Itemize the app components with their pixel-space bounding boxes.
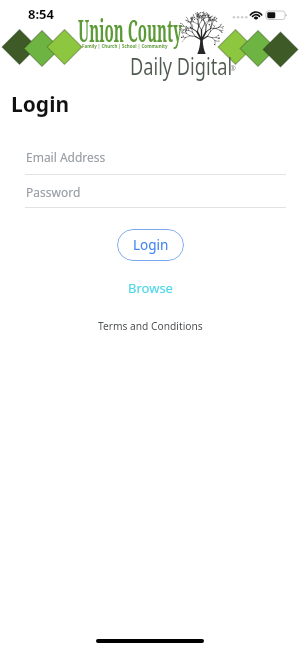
staticText: Family | Church | School | Community: [82, 42, 168, 50]
staticText: Union County: [78, 9, 182, 51]
other: Status icons: [230, 6, 292, 22]
staticText: Daily Digital: [130, 50, 233, 81]
staticText: ®: [230, 64, 236, 74]
staticText: Login: [11, 90, 70, 119]
button[interactable]: Password: [25, 178, 286, 208]
button[interactable]: Login: [117, 229, 184, 261]
staticText: 8:54: [28, 5, 54, 23]
staticText: Login: [133, 236, 169, 254]
staticText: Password: [26, 184, 81, 200]
staticText: Browse: [128, 279, 173, 297]
staticText: Email Address: [26, 149, 106, 165]
button[interactable]: Terms and Conditions: [90, 313, 210, 337]
staticText: Terms and Conditions: [98, 318, 203, 333]
button[interactable]: Browse: [118, 276, 182, 300]
button[interactable]: Email Address: [25, 145, 286, 175]
